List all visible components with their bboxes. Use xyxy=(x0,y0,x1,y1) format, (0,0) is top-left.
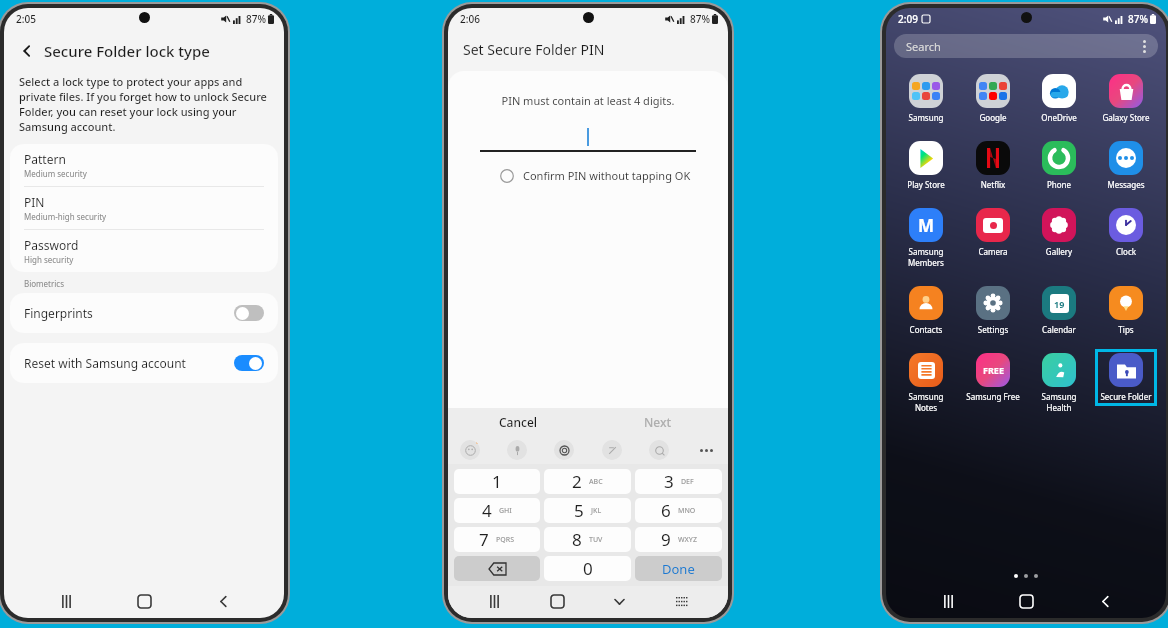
staticText: Phone xyxy=(1028,179,1090,190)
staticText: Fingerprints xyxy=(24,305,234,321)
staticText: 2:06 xyxy=(460,12,480,26)
button[interactable]: Done xyxy=(635,556,722,581)
staticText: DEF xyxy=(681,477,694,487)
staticText: 2 xyxy=(572,470,582,493)
button[interactable]: Password xyxy=(10,230,278,272)
button[interactable]: Reset with Samsung account xyxy=(10,343,278,383)
button[interactable]: Samsung Notes xyxy=(895,349,957,417)
staticText: Settings xyxy=(962,324,1024,335)
button[interactable]: Recents xyxy=(931,586,965,616)
button[interactable]: Phone xyxy=(1028,137,1090,194)
staticText: Confirm PIN without tapping OK xyxy=(523,168,691,183)
button[interactable]: 1 xyxy=(454,469,540,494)
staticText: Google xyxy=(962,112,1024,123)
button[interactable]: Home xyxy=(1009,586,1043,616)
button[interactable]: PIN xyxy=(10,187,278,230)
staticText: Netflix xyxy=(962,179,1024,190)
staticText: FREE xyxy=(983,364,1004,376)
staticText: High security xyxy=(24,254,74,265)
staticText: Select a lock type to protect your apps … xyxy=(19,74,269,134)
button[interactable]: Camera xyxy=(962,204,1024,261)
staticText: Camera xyxy=(962,246,1024,257)
button[interactable]: Hide keyboard xyxy=(665,586,699,616)
staticText: Password xyxy=(24,237,79,253)
staticText: Clock xyxy=(1095,246,1157,257)
button[interactable]: More options xyxy=(696,440,716,460)
button[interactable]: 0 xyxy=(544,556,631,581)
button[interactable]: Netflix xyxy=(962,137,1024,194)
button[interactable]: Play Store xyxy=(895,137,957,194)
staticText: JKL xyxy=(591,506,602,516)
button[interactable]: Handwriting xyxy=(602,440,622,460)
staticText: Secure Folder lock type xyxy=(44,41,210,61)
button[interactable]: Pattern xyxy=(10,144,278,187)
button[interactable]: OneDrive xyxy=(1028,70,1090,127)
staticText: 8 xyxy=(572,528,582,551)
button[interactable]: Cancel xyxy=(448,408,588,436)
staticText: Play Store xyxy=(895,179,957,190)
staticText: Search xyxy=(906,39,1143,54)
staticText: Gallery xyxy=(1028,246,1090,257)
button[interactable]: Recents xyxy=(49,586,83,616)
staticText: Messages xyxy=(1095,179,1157,190)
button[interactable]: Search xyxy=(649,440,669,460)
button[interactable]: 5 xyxy=(544,498,631,523)
button[interactable]: Next xyxy=(588,408,728,436)
button[interactable]: Secure Folder xyxy=(1095,349,1157,406)
button[interactable]: Samsung Health xyxy=(1028,349,1090,417)
button[interactable]: Galaxy Store xyxy=(1095,70,1157,127)
button[interactable]: 2 xyxy=(544,469,631,494)
button[interactable]: Emoji xyxy=(460,440,480,460)
staticText: 7 xyxy=(479,528,489,551)
button[interactable]: Clock xyxy=(1095,204,1157,261)
button[interactable]: 9 xyxy=(635,527,722,552)
button[interactable]: Google xyxy=(962,70,1024,127)
button[interactable]: 7 xyxy=(454,527,540,552)
staticText: Contacts xyxy=(895,324,957,335)
button[interactable]: Samsung xyxy=(895,70,957,127)
button[interactable]: 3 xyxy=(635,469,722,494)
staticText: 4 xyxy=(482,499,492,522)
staticText: PIN xyxy=(24,194,45,210)
staticText: 3 xyxy=(664,470,674,493)
staticText: 2:09 xyxy=(898,12,918,26)
button[interactable]: 8 xyxy=(544,527,631,552)
staticText: MNO xyxy=(678,506,696,516)
button[interactable]: Home xyxy=(127,586,161,616)
button[interactable]: Confirm PIN without tapping OK xyxy=(500,168,728,183)
button[interactable]: Settings xyxy=(962,282,1024,339)
staticText: Reset with Samsung account xyxy=(24,355,234,371)
button[interactable]: Back xyxy=(206,586,240,616)
button[interactable]: Back xyxy=(1088,586,1122,616)
button[interactable]: Gallery xyxy=(1028,204,1090,261)
staticText: 9 xyxy=(661,528,671,551)
button[interactable]: Back xyxy=(14,38,40,64)
staticText: M xyxy=(918,214,935,237)
staticText: 1 xyxy=(492,470,502,493)
button[interactable]: FREE xyxy=(962,349,1024,406)
button[interactable]: Messages xyxy=(1095,137,1157,194)
button[interactable]: 4 xyxy=(454,498,540,523)
button[interactable]: Contacts xyxy=(895,282,957,339)
button[interactable]: Home xyxy=(540,586,574,616)
staticText: Samsung xyxy=(895,112,957,123)
button[interactable]: M xyxy=(895,204,957,272)
button[interactable]: Settings xyxy=(554,440,574,460)
button[interactable]: Fingerprints xyxy=(10,293,278,333)
button[interactable]: 19 xyxy=(1028,282,1090,339)
staticText: TUV xyxy=(589,535,603,545)
staticText: Tips xyxy=(1095,324,1157,335)
staticText: 87% xyxy=(690,12,710,26)
staticText: 19 xyxy=(1054,298,1065,310)
button[interactable]: Back xyxy=(602,586,636,616)
button[interactable]: 6 xyxy=(635,498,722,523)
staticText: ABC xyxy=(589,477,603,487)
button[interactable]: Backspace xyxy=(454,556,540,581)
button[interactable]: Search xyxy=(894,34,1158,58)
button[interactable]: Voice input xyxy=(507,440,527,460)
staticText: Samsung Notes xyxy=(895,391,957,413)
staticText: Samsung Free xyxy=(962,391,1024,402)
staticText: Pattern xyxy=(24,151,66,167)
button[interactable]: Recents xyxy=(477,586,511,616)
button[interactable]: Tips xyxy=(1095,282,1157,339)
